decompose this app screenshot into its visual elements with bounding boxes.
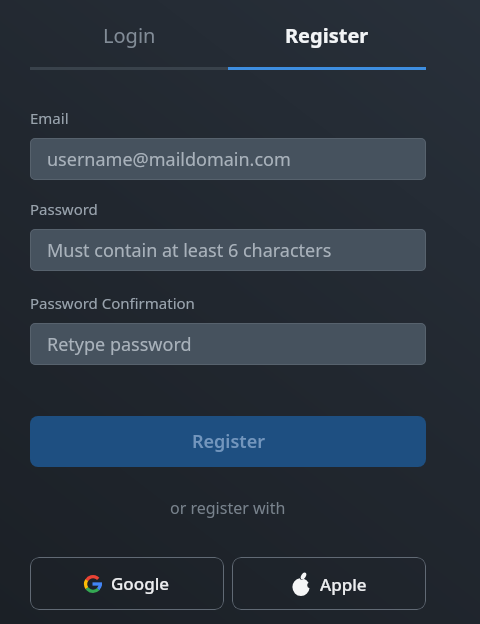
staticText: Password: [30, 199, 98, 219]
staticText: Google: [111, 572, 170, 595]
button[interactable]: Register: [30, 416, 426, 467]
button[interactable]: username@maildomain.com: [30, 138, 426, 180]
staticText: Must contain at least 6 characters: [47, 238, 332, 263]
button[interactable]: Register: [228, 0, 426, 70]
staticText: Password Confirmation: [30, 293, 195, 313]
staticText: Retype password: [47, 332, 192, 357]
staticText: or register with: [170, 497, 286, 519]
staticText: username@maildomain.com: [47, 147, 291, 172]
staticText: Register: [285, 22, 369, 49]
button[interactable]: Google: [30, 557, 224, 610]
button[interactable]: Must contain at least 6 characters: [30, 229, 426, 271]
button[interactable]: Login: [30, 0, 228, 70]
button[interactable]: Apple: [232, 557, 426, 610]
staticText: Register: [192, 429, 265, 454]
staticText: Apple: [320, 573, 367, 596]
button[interactable]: Retype password: [30, 323, 426, 365]
staticText: Email: [30, 108, 69, 128]
staticText: Login: [103, 22, 156, 49]
